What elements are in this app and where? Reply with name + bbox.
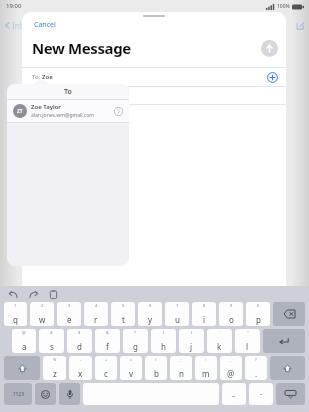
button[interactable]: Paste [48, 289, 59, 300]
button[interactable]: Emoji [35, 383, 56, 405]
button[interactable]: * [123, 329, 148, 353]
button[interactable]: Shift [270, 356, 305, 380]
staticText: o [229, 314, 234, 325]
staticText: 9 [230, 303, 233, 308]
button[interactable]: 3 [57, 302, 81, 326]
staticText: ( [163, 330, 165, 335]
button[interactable]: _ [222, 383, 246, 405]
staticText: # [50, 330, 53, 335]
staticText: 8 [203, 303, 206, 308]
staticText: a [22, 341, 27, 352]
button[interactable]: Backspace [273, 302, 305, 326]
button[interactable]: 1 [4, 302, 27, 326]
button[interactable]: 5 [111, 302, 135, 326]
button[interactable]: Send [261, 40, 278, 57]
staticText: c [104, 368, 108, 379]
staticText: k [217, 341, 222, 352]
staticText: 2 [41, 303, 44, 308]
staticText: " [247, 330, 249, 335]
button[interactable]: - [69, 356, 92, 380]
staticText: . [255, 368, 258, 379]
staticText: t [122, 314, 125, 325]
staticText: @ [227, 368, 235, 379]
button[interactable]: ( [151, 329, 176, 353]
staticText: 0 [257, 303, 260, 308]
button[interactable]: + [95, 356, 117, 380]
button[interactable]: .?123 [4, 383, 32, 405]
staticText: n [179, 368, 184, 379]
button[interactable]: # [39, 329, 64, 353]
button[interactable]: " [235, 329, 260, 353]
staticText: 19:00 [6, 2, 22, 10]
button[interactable]: & [95, 329, 120, 353]
staticText: : [205, 357, 207, 362]
staticText: u [175, 314, 180, 325]
staticText: 5 [122, 303, 125, 308]
staticText: - [80, 357, 82, 362]
staticText: d [77, 341, 82, 352]
staticText: w [39, 314, 46, 325]
button[interactable]: 6 [138, 302, 162, 326]
button[interactable]: Add contact [267, 72, 278, 83]
button[interactable]: 7 [165, 302, 189, 326]
staticText: To [64, 87, 72, 97]
staticText: p [256, 314, 261, 325]
staticText: ? [255, 357, 257, 362]
button[interactable]: 9 [219, 302, 243, 326]
staticText: Cancel [34, 20, 56, 30]
staticText: , [230, 357, 232, 362]
staticText: Inbox [12, 20, 34, 31]
staticText: i [203, 314, 206, 325]
staticText: ) [191, 330, 193, 335]
staticText: * [134, 330, 137, 335]
staticText: z [53, 368, 57, 379]
staticText: 100% [277, 3, 290, 10]
button[interactable]: ' [207, 329, 232, 353]
staticText: 3 [68, 303, 71, 308]
button[interactable]: ) [179, 329, 204, 353]
staticText: ZT [17, 108, 23, 115]
button[interactable]: - [249, 383, 273, 405]
staticText: f [106, 341, 109, 352]
staticText: @ [22, 330, 26, 335]
staticText: 1 [14, 303, 17, 308]
staticText: New Message [32, 38, 261, 58]
button[interactable]: Dictation [59, 383, 80, 405]
staticText: .?123 [12, 391, 25, 398]
staticText: Zoe Taylor [31, 103, 61, 111]
button[interactable]: 8 [192, 302, 216, 326]
button[interactable]: 4 [84, 302, 108, 326]
button[interactable]: @ [12, 329, 36, 353]
button[interactable]: Hide keyboard [276, 383, 305, 405]
staticText: s [50, 341, 54, 352]
staticText: j [190, 341, 193, 352]
button[interactable]: 0 [246, 302, 270, 326]
button[interactable]: ; [170, 356, 192, 380]
staticText: b [154, 368, 159, 379]
button[interactable]: 2 [30, 302, 54, 326]
staticText: / [155, 357, 157, 362]
button[interactable]: = [120, 356, 142, 380]
button[interactable]: Contact info [114, 107, 123, 116]
button[interactable]: Undo [8, 289, 19, 300]
button[interactable]: , [220, 356, 242, 380]
button[interactable]: Redo [28, 289, 39, 300]
button[interactable]: : [195, 356, 217, 380]
button[interactable]: % [43, 356, 66, 380]
button[interactable]: Cancel [32, 18, 58, 32]
staticText: m [202, 368, 210, 379]
staticText: g [133, 341, 138, 352]
staticText: _ [232, 389, 236, 399]
button[interactable]: / [145, 356, 167, 380]
button[interactable]: ? [245, 356, 267, 380]
staticText: l [246, 341, 249, 352]
button[interactable]: Return [263, 329, 305, 353]
staticText: r [94, 314, 98, 325]
staticText: alan.jones.wm@gmail.com [31, 112, 94, 119]
button[interactable]: Shift [4, 356, 40, 380]
staticText: Zoe [42, 73, 53, 81]
button[interactable]: $ [67, 329, 92, 353]
button[interactable]: ZT [7, 100, 129, 122]
staticText: & [106, 330, 109, 335]
